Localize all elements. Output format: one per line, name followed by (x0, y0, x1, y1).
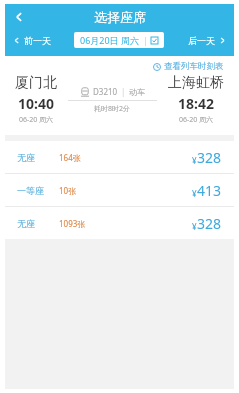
button[interactable]: 前一天 (5, 30, 74, 50)
staticText: 06-20 周六 (19, 115, 54, 125)
button[interactable]: 无座 (5, 141, 234, 173)
button[interactable]: 无座 (5, 207, 234, 239)
staticText: 328 (197, 214, 222, 233)
button[interactable]: 一等座 (5, 174, 234, 206)
button[interactable]: Back (5, 4, 33, 30)
staticText: 动车 (129, 87, 145, 97)
staticText: 10张 (59, 185, 77, 196)
staticText: 厦门北 (15, 74, 57, 92)
staticText: ¥ (192, 188, 197, 199)
staticText: 06-20 周六 (179, 115, 214, 125)
staticText: 后一天 (188, 35, 215, 46)
staticText: 无座 (17, 152, 59, 163)
staticText: 06月20日 周六 (80, 34, 139, 46)
staticText: 413 (197, 181, 222, 200)
staticText: 18:42 (178, 94, 214, 113)
staticText: 耗时8时2分 (94, 104, 131, 114)
staticText: | (143, 34, 148, 46)
staticText: | (121, 86, 126, 97)
staticText: ¥ (192, 155, 197, 166)
staticText: 前一天 (24, 35, 51, 46)
button[interactable]: 后一天 (164, 30, 234, 50)
staticText: 上海虹桥 (168, 74, 224, 92)
staticText: 一等座 (17, 185, 59, 196)
button[interactable]: 查看列车时刻表 (153, 56, 234, 74)
staticText: 164张 (59, 152, 81, 163)
staticText: 10:40 (18, 94, 54, 113)
staticText: D3210 (93, 86, 118, 97)
staticText: 328 (197, 148, 222, 167)
staticText: 查看列车时刻表 (164, 61, 224, 72)
staticText: 无座 (17, 218, 59, 229)
staticText: 选择座席 (94, 9, 146, 25)
staticText: ¥ (192, 221, 197, 232)
button[interactable]: 06月20日 周六 (74, 32, 164, 48)
staticText: 1093张 (59, 218, 86, 229)
